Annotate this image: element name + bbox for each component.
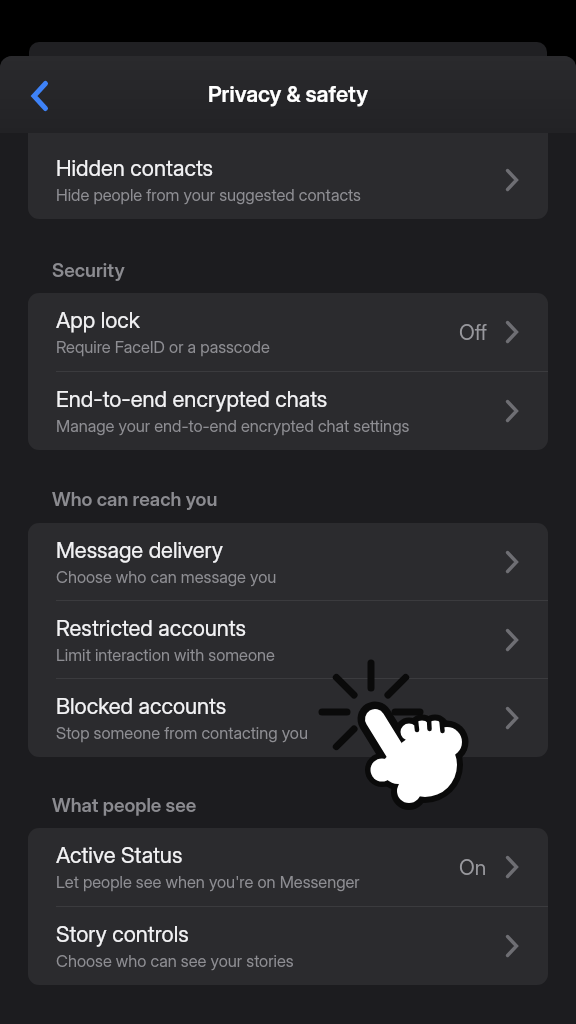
staticText: Require FaceID or a passcode [56,337,270,357]
staticText: Who can reach you [52,488,218,511]
button[interactable]: Message delivery [28,523,548,600]
staticText: Message delivery [56,537,224,564]
staticText: Choose who can see your stories [56,951,294,971]
staticText: Limit interaction with someone [56,645,275,665]
staticText: Blocked accounts [56,693,227,720]
button[interactable]: Hidden contacts [28,133,548,219]
button[interactable]: Blocked accounts [28,679,548,757]
staticText: Manage your end-to-end encrypted chat se… [56,416,410,436]
button[interactable] [18,74,62,118]
staticText: App lock [56,307,141,334]
staticText: Active Status [56,842,183,869]
staticText: Story controls [56,921,189,948]
staticText: Off [459,320,487,345]
staticText: Hide people from your suggested contacts [56,185,361,205]
button[interactable]: End-to-end encrypted chats [28,372,548,450]
staticText: Hidden contacts [56,155,214,182]
button[interactable]: Story controls [28,907,548,985]
staticText: Restricted accounts [56,615,246,642]
staticText: End-to-end encrypted chats [56,386,328,413]
staticText: Security [52,259,125,282]
staticText: Let people see when you're on Messenger [56,872,360,892]
button[interactable]: Active Status [28,828,548,906]
button[interactable]: App lock [28,293,548,371]
staticText: Stop someone from contacting you [56,723,308,743]
staticText: What people see [52,794,197,817]
staticText: On [459,855,487,880]
staticText: Choose who can message you [56,567,277,587]
button[interactable]: Restricted accounts [28,601,548,678]
staticText: Privacy & safety [208,81,369,108]
